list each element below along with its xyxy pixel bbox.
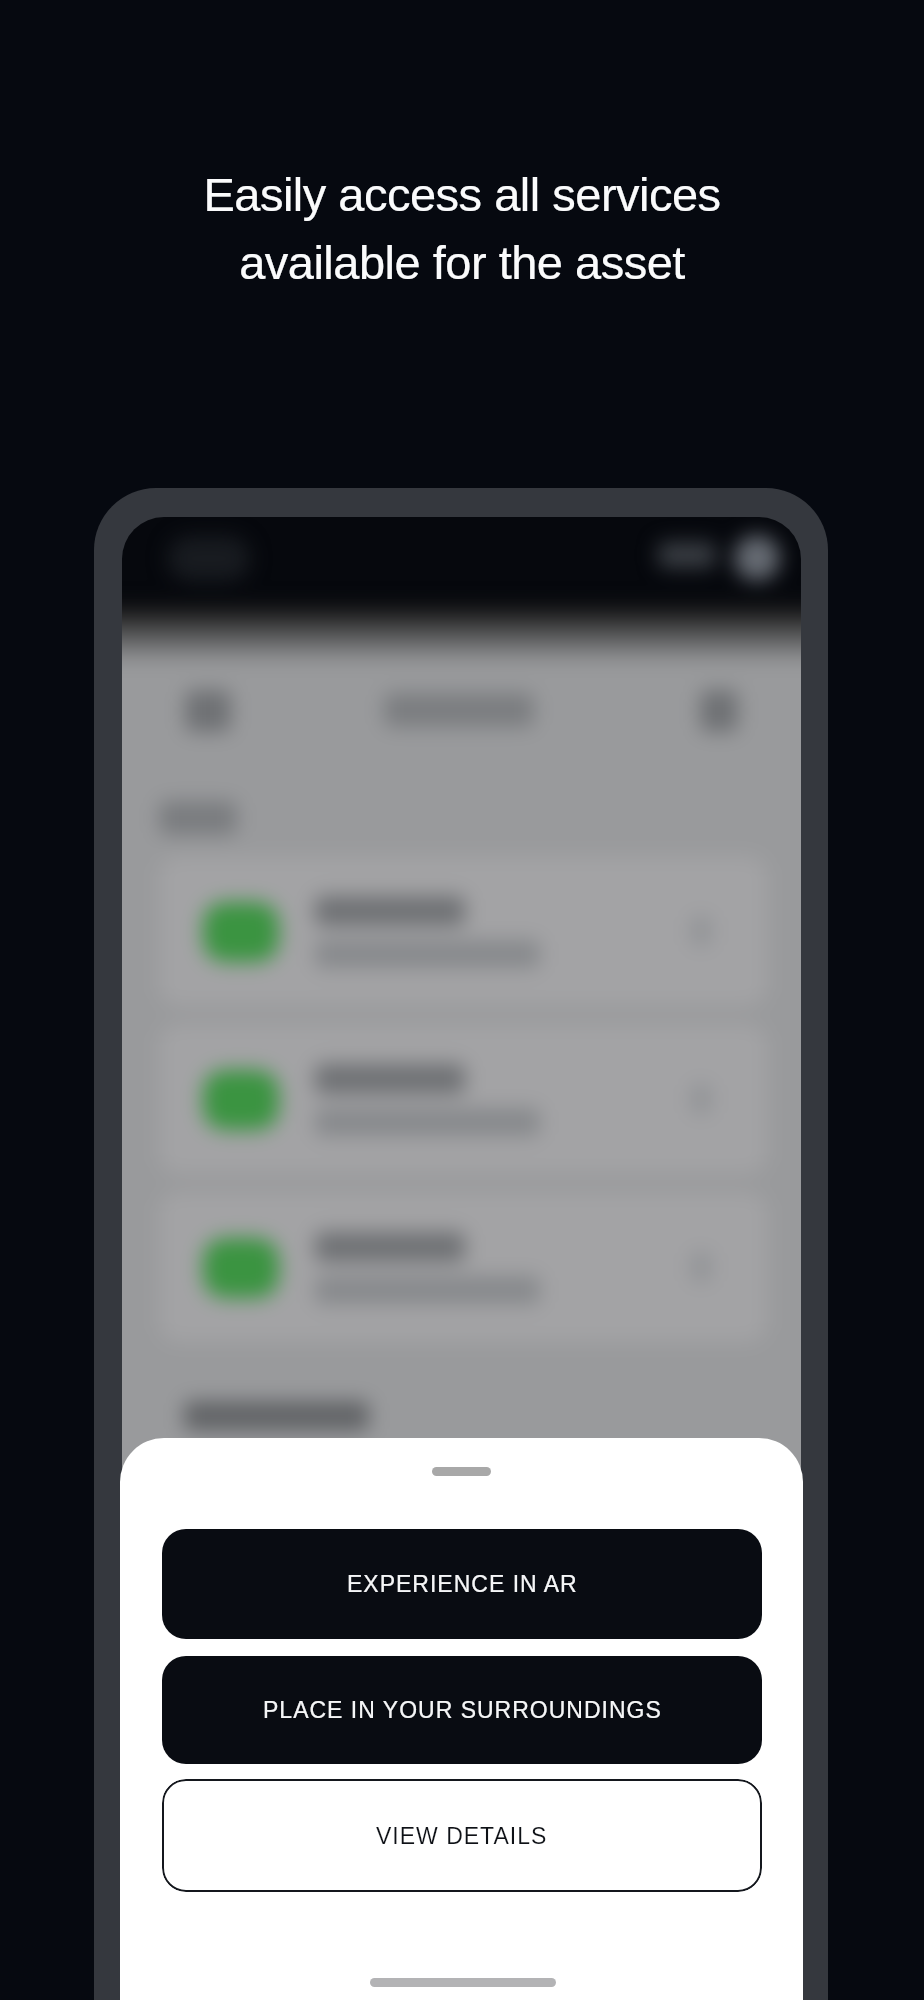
staticText: EXPERIENCE IN AR	[347, 1571, 578, 1597]
staticText: VIEW DETAILS	[376, 1823, 548, 1849]
staticText: Easily access all services	[0, 168, 924, 221]
button[interactable]: VIEW DETAILS	[162, 1779, 762, 1892]
staticText: PLACE IN YOUR SURROUNDINGS	[263, 1697, 662, 1723]
button[interactable]: PLACE IN YOUR SURROUNDINGS	[162, 1656, 762, 1764]
button[interactable]: EXPERIENCE IN AR	[162, 1529, 762, 1639]
staticText: available for the asset	[0, 236, 924, 289]
